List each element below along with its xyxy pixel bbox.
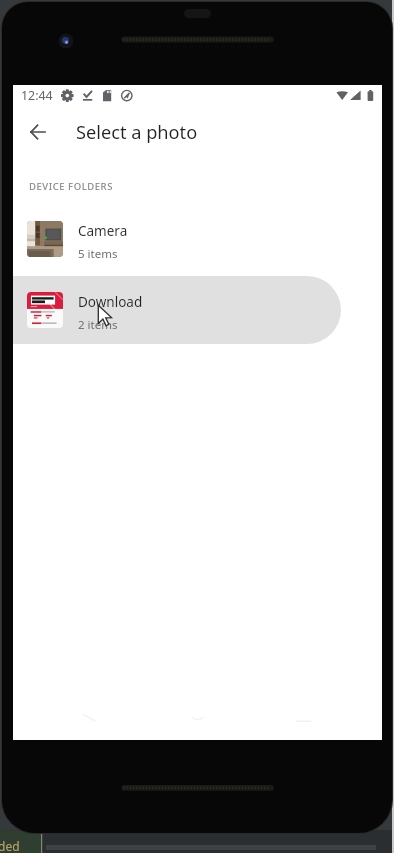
- staticText: DEVICE FOLDERS: [29, 180, 113, 193]
- staticText: ded: [0, 838, 20, 853]
- staticText: Camera: [78, 222, 128, 240]
- staticText: 2 items: [78, 317, 118, 333]
- button[interactable]: Download: [13, 276, 382, 344]
- staticText: Select a photo: [76, 120, 198, 145]
- staticText: Download: [78, 293, 143, 311]
- button[interactable]: Camera: [13, 205, 382, 273]
- button[interactable]: Back: [18, 112, 58, 152]
- staticText: 5 items: [78, 246, 118, 262]
- staticText: 12:44: [21, 87, 53, 104]
